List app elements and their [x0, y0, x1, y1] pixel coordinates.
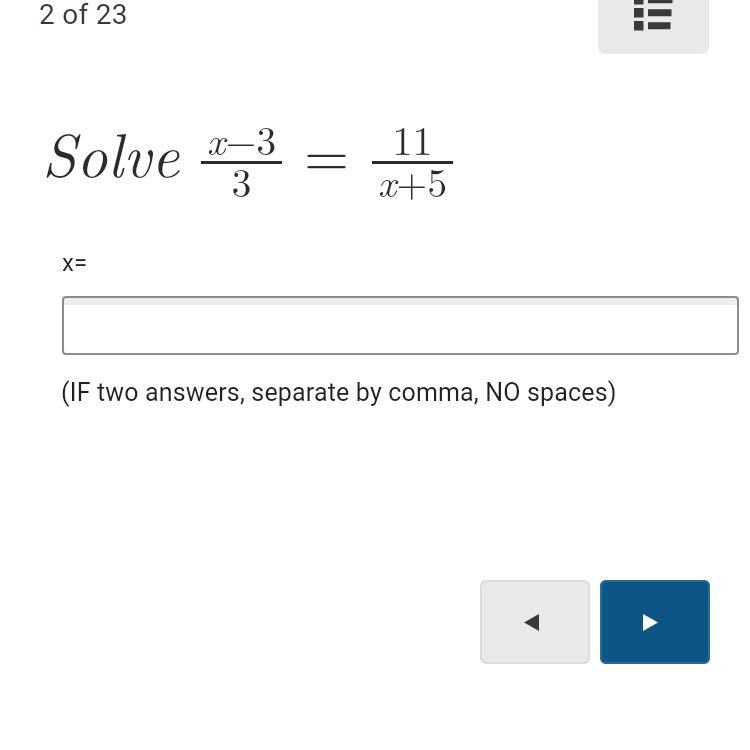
button[interactable]: Next question	[600, 580, 710, 664]
staticText: x+5	[372, 152, 453, 209]
staticText: x−3	[201, 110, 282, 167]
staticText: Solve	[42, 108, 180, 194]
staticText: 2 of 23	[39, 0, 128, 31]
staticText: 3	[201, 152, 282, 209]
staticText: x=	[62, 249, 88, 277]
button[interactable]: Question list	[598, 0, 709, 54]
staticText: =	[304, 111, 350, 193]
staticText: (IF two answers, separate by comma, NO s…	[61, 378, 617, 407]
button[interactable]	[62, 296, 739, 355]
staticText: 11	[372, 110, 453, 167]
button[interactable]: Previous question	[480, 580, 590, 664]
